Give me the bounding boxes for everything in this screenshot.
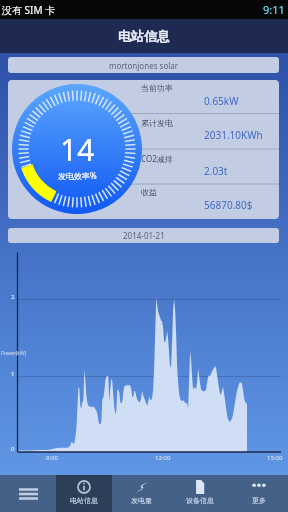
button[interactable]: 更多: [229, 475, 288, 512]
staticText: 2.03t: [204, 164, 228, 178]
staticText: 9:00: [46, 454, 58, 462]
button[interactable]: Menu: [0, 475, 56, 512]
staticText: 12:00: [155, 454, 171, 462]
staticText: 当前功率: [141, 83, 173, 93]
staticText: 设备信息: [186, 496, 214, 505]
staticText: 发电效率%: [58, 170, 97, 181]
button[interactable]: 设备信息: [170, 475, 229, 512]
staticText: 1: [11, 370, 15, 378]
staticText: 14: [60, 129, 95, 170]
staticText: 收益: [141, 187, 157, 197]
button[interactable]: 电站信息: [56, 475, 112, 512]
staticText: 累计发电: [141, 118, 173, 128]
staticText: 2031.10KWh: [204, 128, 263, 142]
staticText: 电站信息: [70, 496, 98, 505]
staticText: CO2减排: [141, 153, 173, 164]
staticText: 56870.80$: [204, 198, 253, 212]
button[interactable]: mortonjones solar: [8, 57, 279, 73]
staticText: 电站信息: [118, 28, 170, 44]
staticText: 2: [11, 293, 15, 301]
staticText: mortonjones solar: [109, 60, 179, 71]
staticText: 2014-01-21: [123, 230, 165, 241]
staticText: 发电量: [131, 496, 152, 505]
staticText: 0.65kW: [204, 94, 239, 108]
staticText: 没有 SIM 卡: [2, 3, 56, 17]
staticText: 更多: [252, 496, 266, 505]
button[interactable]: 2014-01-21: [8, 228, 279, 243]
staticText: 9:11: [263, 2, 285, 17]
staticText: 0: [11, 445, 15, 453]
staticText: 15:00: [267, 454, 283, 462]
staticText: Power(kW): [1, 350, 27, 357]
button[interactable]: 发电量: [112, 475, 170, 512]
